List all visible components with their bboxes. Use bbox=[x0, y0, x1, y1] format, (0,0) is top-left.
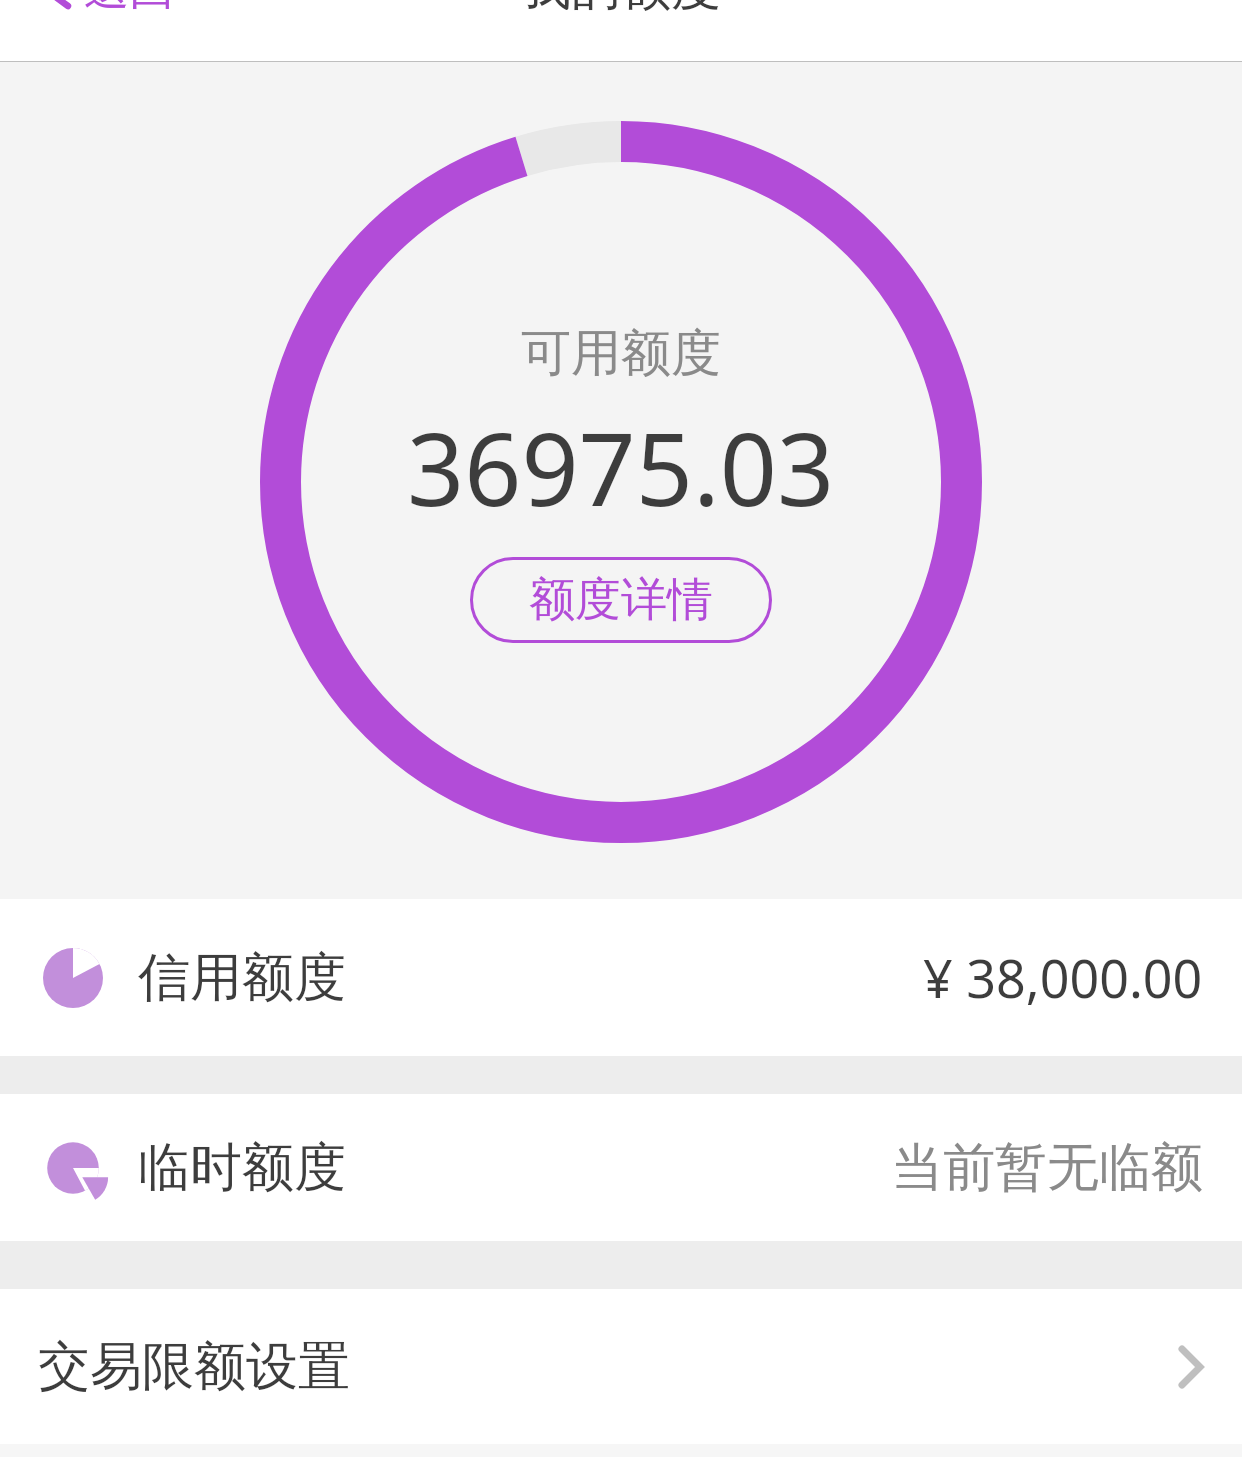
staticText: 信用额度 bbox=[138, 945, 346, 1011]
staticText: 额度详情 bbox=[529, 571, 713, 629]
staticText: 可用额度 bbox=[521, 322, 721, 385]
button[interactable]: 额度详情 bbox=[470, 557, 772, 643]
staticText: 当前暂无临额 bbox=[891, 1135, 1203, 1201]
staticText: 交易限额设置 bbox=[38, 1334, 350, 1400]
staticText: 临时额度 bbox=[138, 1135, 346, 1201]
button[interactable]: 交易限额设置 bbox=[0, 1289, 1242, 1444]
other: More bbox=[1180, 1347, 1202, 1387]
button[interactable]: 临时额度 bbox=[0, 1094, 1242, 1241]
staticText: ¥ 38,000.00 bbox=[923, 942, 1203, 1013]
staticText: 36975.03 bbox=[407, 399, 835, 535]
staticText: 返回 bbox=[84, 0, 174, 18]
button[interactable]: 返回 bbox=[0, 0, 204, 20]
button[interactable]: 信用额度 bbox=[0, 899, 1242, 1056]
staticText: 我的额度 bbox=[521, 0, 721, 17]
